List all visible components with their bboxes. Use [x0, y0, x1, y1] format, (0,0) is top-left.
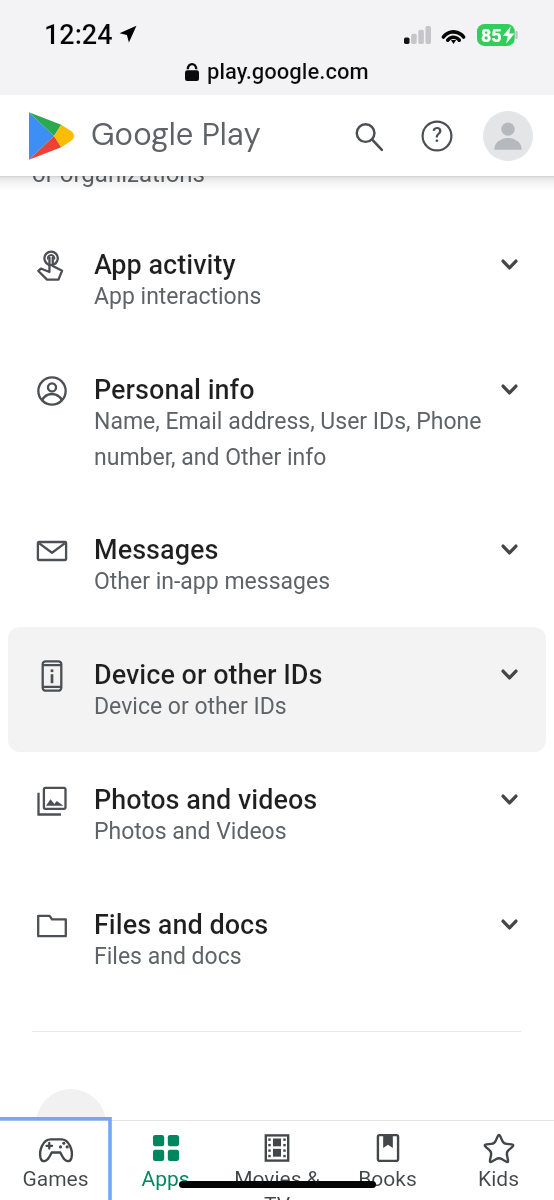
button[interactable]: Movies & TV	[221, 1120, 332, 1200]
staticText: or organizations	[32, 160, 205, 188]
staticText: Personal info	[94, 374, 255, 406]
staticText: 85	[481, 25, 502, 46]
button[interactable]: Games	[0, 1120, 110, 1200]
button[interactable]: Search	[342, 110, 394, 162]
button[interactable]: Device or other IDs	[8, 627, 546, 752]
button[interactable]: Account	[483, 111, 533, 161]
button[interactable]: Photos and videos	[8, 752, 546, 877]
staticText: Files and docs	[94, 909, 269, 941]
staticText: 12:24	[44, 19, 113, 51]
staticText: Books	[358, 1167, 417, 1192]
button[interactable]: Books	[332, 1120, 443, 1200]
button[interactable]: Kids	[443, 1120, 554, 1200]
staticText: Other in-app messages	[94, 568, 331, 595]
staticText: Messages	[94, 534, 219, 566]
staticText: Google Play	[91, 114, 261, 154]
staticText: Apps	[141, 1167, 190, 1192]
staticText: ?	[432, 123, 443, 148]
button[interactable]: App activity	[8, 217, 546, 342]
staticText: Photos and Videos	[94, 818, 287, 845]
button[interactable]: Personal info	[8, 342, 546, 502]
staticText: Games	[22, 1167, 89, 1192]
staticText: Device or other IDs	[94, 693, 287, 720]
staticText: Files and docs	[94, 943, 242, 970]
button[interactable]: Apps	[110, 1120, 221, 1200]
staticText: App interactions	[94, 283, 262, 310]
staticText: Movies & TV	[234, 1167, 320, 1200]
staticText: play.google.com	[207, 59, 369, 85]
staticText: Photos and videos	[94, 784, 318, 816]
button[interactable]: Help	[411, 110, 463, 162]
button[interactable]: Files and docs	[8, 877, 546, 1002]
staticText: Name, Email address, User IDs, Phone num…	[94, 408, 482, 470]
staticText: Device or other IDs	[94, 659, 323, 691]
button[interactable]: Messages	[8, 502, 546, 627]
staticText: Kids	[478, 1167, 519, 1192]
staticText: App activity	[94, 249, 236, 281]
